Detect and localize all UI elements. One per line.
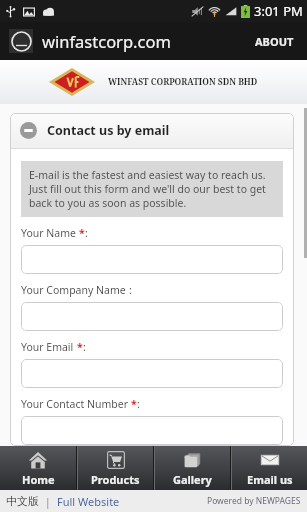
staticText: 3:01 PM	[254, 2, 303, 20]
staticText: *	[131, 397, 137, 411]
staticText: Your Email	[21, 340, 77, 354]
staticText: Email us	[247, 472, 293, 487]
button[interactable]: Contact us by email	[10, 113, 294, 148]
staticText: Your Name	[21, 226, 79, 240]
staticText: Your Company Name	[21, 283, 129, 297]
button[interactable]	[21, 359, 283, 388]
button[interactable]: 中文版	[6, 494, 39, 508]
staticText: *	[77, 340, 83, 354]
button[interactable]: Products	[78, 446, 153, 490]
button[interactable]: Email us	[232, 446, 307, 490]
staticText: :	[83, 340, 86, 354]
staticText: Products	[91, 472, 140, 487]
button[interactable]	[21, 302, 283, 331]
staticText: *	[79, 226, 85, 240]
staticText: Home	[22, 472, 55, 487]
staticText: Full Website	[57, 494, 120, 509]
button[interactable]: Full Website	[57, 494, 120, 509]
button[interactable]	[21, 416, 283, 445]
staticText: Your Contact Number	[21, 397, 131, 411]
staticText: E-mail is the fastest and easiest way to…	[29, 168, 275, 210]
staticText: :	[137, 397, 140, 411]
staticText: Powered by NEWPAGES	[207, 495, 301, 507]
button[interactable]: ABOUT	[251, 28, 298, 55]
button[interactable]: Home	[0, 446, 76, 490]
button[interactable]	[21, 245, 283, 274]
staticText: Gallery	[173, 472, 212, 487]
staticText: ABOUT	[255, 34, 294, 49]
staticText: winfastcorp.com	[42, 30, 171, 52]
staticText: WINFAST CORPORATION SDN BHD	[108, 76, 258, 88]
staticText: :	[129, 283, 132, 297]
staticText: |	[39, 494, 57, 509]
button[interactable]: Gallery	[155, 446, 230, 490]
button[interactable]: Site logo	[9, 29, 33, 53]
staticText: Contact us by email	[47, 122, 170, 139]
staticText: 中文版	[6, 494, 39, 508]
staticText: :	[85, 226, 88, 240]
